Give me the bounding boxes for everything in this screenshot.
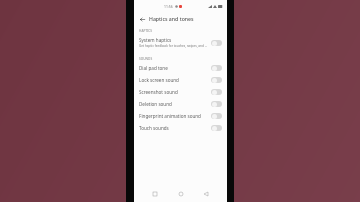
staticText: HAPTICS bbox=[139, 29, 153, 33]
button[interactable]: Screenshot sound bbox=[134, 86, 227, 98]
staticText: Haptics and tones bbox=[149, 15, 194, 22]
button[interactable]: Back bbox=[138, 15, 146, 23]
button[interactable]: Dial pad tone bbox=[134, 62, 227, 74]
button[interactable]: Recent apps bbox=[150, 189, 160, 199]
button[interactable]: Toggle bbox=[211, 40, 222, 46]
staticText: SOUNDS bbox=[139, 57, 153, 61]
staticText: Get haptic feedback for touches, swipes,… bbox=[139, 44, 208, 48]
staticText: System haptics bbox=[139, 37, 172, 43]
button[interactable]: Back bbox=[201, 189, 211, 199]
button[interactable]: Home bbox=[176, 189, 186, 199]
staticText: Touch sounds bbox=[139, 125, 169, 131]
staticText: Dial pad tone bbox=[139, 65, 168, 71]
button[interactable]: Touch sounds bbox=[134, 122, 227, 134]
button[interactable]: System haptics bbox=[134, 34, 227, 51]
button[interactable]: Fingerprint animation sound bbox=[134, 110, 227, 122]
button[interactable]: Toggle bbox=[211, 77, 222, 83]
button[interactable]: Lock screen sound bbox=[134, 74, 227, 86]
staticText: 11:56 bbox=[164, 4, 173, 9]
button[interactable]: Toggle bbox=[211, 89, 222, 95]
button[interactable]: Toggle bbox=[211, 113, 222, 119]
button[interactable]: Toggle bbox=[211, 101, 222, 107]
staticText: Lock screen sound bbox=[139, 77, 179, 83]
button[interactable]: Deletion sound bbox=[134, 98, 227, 110]
staticText: Fingerprint animation sound bbox=[139, 113, 201, 119]
button[interactable]: Toggle bbox=[211, 125, 222, 131]
staticText: Screenshot sound bbox=[139, 89, 178, 95]
staticText: Deletion sound bbox=[139, 101, 172, 107]
button[interactable]: Toggle bbox=[211, 65, 222, 71]
